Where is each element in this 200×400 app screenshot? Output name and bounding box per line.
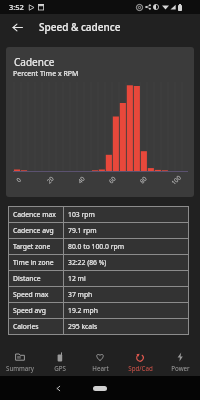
- staticText: Speed max: [13, 290, 49, 299]
- staticText: 40: [76, 175, 87, 185]
- button[interactable]: Power: [160, 348, 200, 376]
- staticText: 32:22 (86 %): [68, 258, 107, 267]
- staticText: Spd/Cad: [128, 364, 153, 372]
- staticText: 19.2 mph: [68, 306, 98, 315]
- staticText: 0: [15, 176, 23, 184]
- button[interactable]: Back: [5, 15, 29, 39]
- staticText: GPS: [54, 364, 66, 372]
- staticText: Distance: [13, 274, 41, 283]
- staticText: Calories: [13, 322, 39, 331]
- button[interactable]: GPS: [40, 348, 80, 376]
- staticText: 295 kcals: [68, 322, 98, 331]
- button[interactable]: Spd/Cad: [120, 348, 160, 376]
- staticText: 103 rpm: [68, 210, 95, 219]
- staticText: 12 mi: [68, 274, 86, 283]
- staticText: 37 mph: [68, 290, 93, 299]
- button[interactable]: Summary: [0, 348, 40, 376]
- button[interactable]: Heart: [80, 348, 120, 376]
- staticText: Power: [171, 364, 190, 372]
- staticText: Cadence avg: [13, 226, 54, 235]
- staticText: Percent Time x RPM: [13, 69, 79, 79]
- staticText: Target zone: [13, 242, 51, 251]
- staticText: Cadence max: [13, 210, 56, 219]
- staticText: Speed & cadence: [39, 20, 121, 34]
- staticText: Summary: [6, 364, 34, 372]
- staticText: 80.0 to 100.0 rpm: [68, 242, 125, 251]
- staticText: 79.1 rpm: [68, 226, 97, 235]
- staticText: Heart: [92, 364, 109, 372]
- staticText: Time in zone: [13, 258, 54, 267]
- staticText: 60: [107, 175, 118, 185]
- staticText: Cadence: [14, 55, 55, 69]
- staticText: 20: [45, 175, 56, 185]
- staticText: 3:52: [9, 2, 24, 12]
- button[interactable]: Back: [52, 382, 64, 394]
- staticText: 100: [170, 173, 183, 187]
- staticText: Speed avg: [13, 306, 46, 315]
- staticText: 80: [138, 175, 149, 185]
